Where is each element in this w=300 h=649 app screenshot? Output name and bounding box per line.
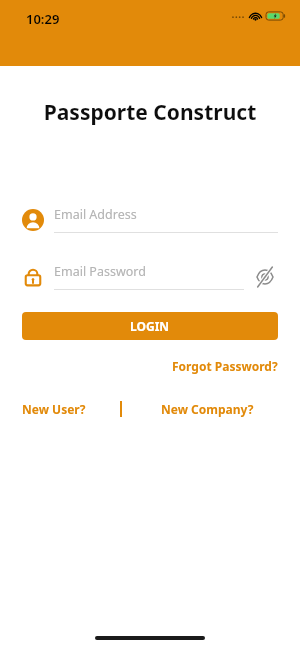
staticText: New Company? [161, 401, 254, 417]
button[interactable]: Show password [252, 264, 278, 290]
staticText: Forgot Password? [172, 358, 278, 374]
staticText: Email Password [54, 263, 146, 280]
button[interactable]: New User? [22, 401, 86, 417]
staticText: Email Address [54, 206, 137, 223]
staticText: Passporte Construct [0, 98, 300, 127]
staticText: New User? [22, 401, 86, 417]
button[interactable]: Email Password [22, 263, 244, 290]
button[interactable]: New Company? [161, 401, 254, 417]
staticText: 10:29 [26, 10, 60, 28]
button[interactable]: Email Address [22, 206, 278, 233]
button[interactable]: Forgot Password? [150, 354, 300, 378]
staticText: LOGIN [130, 318, 170, 334]
button[interactable]: LOGIN [22, 312, 278, 340]
